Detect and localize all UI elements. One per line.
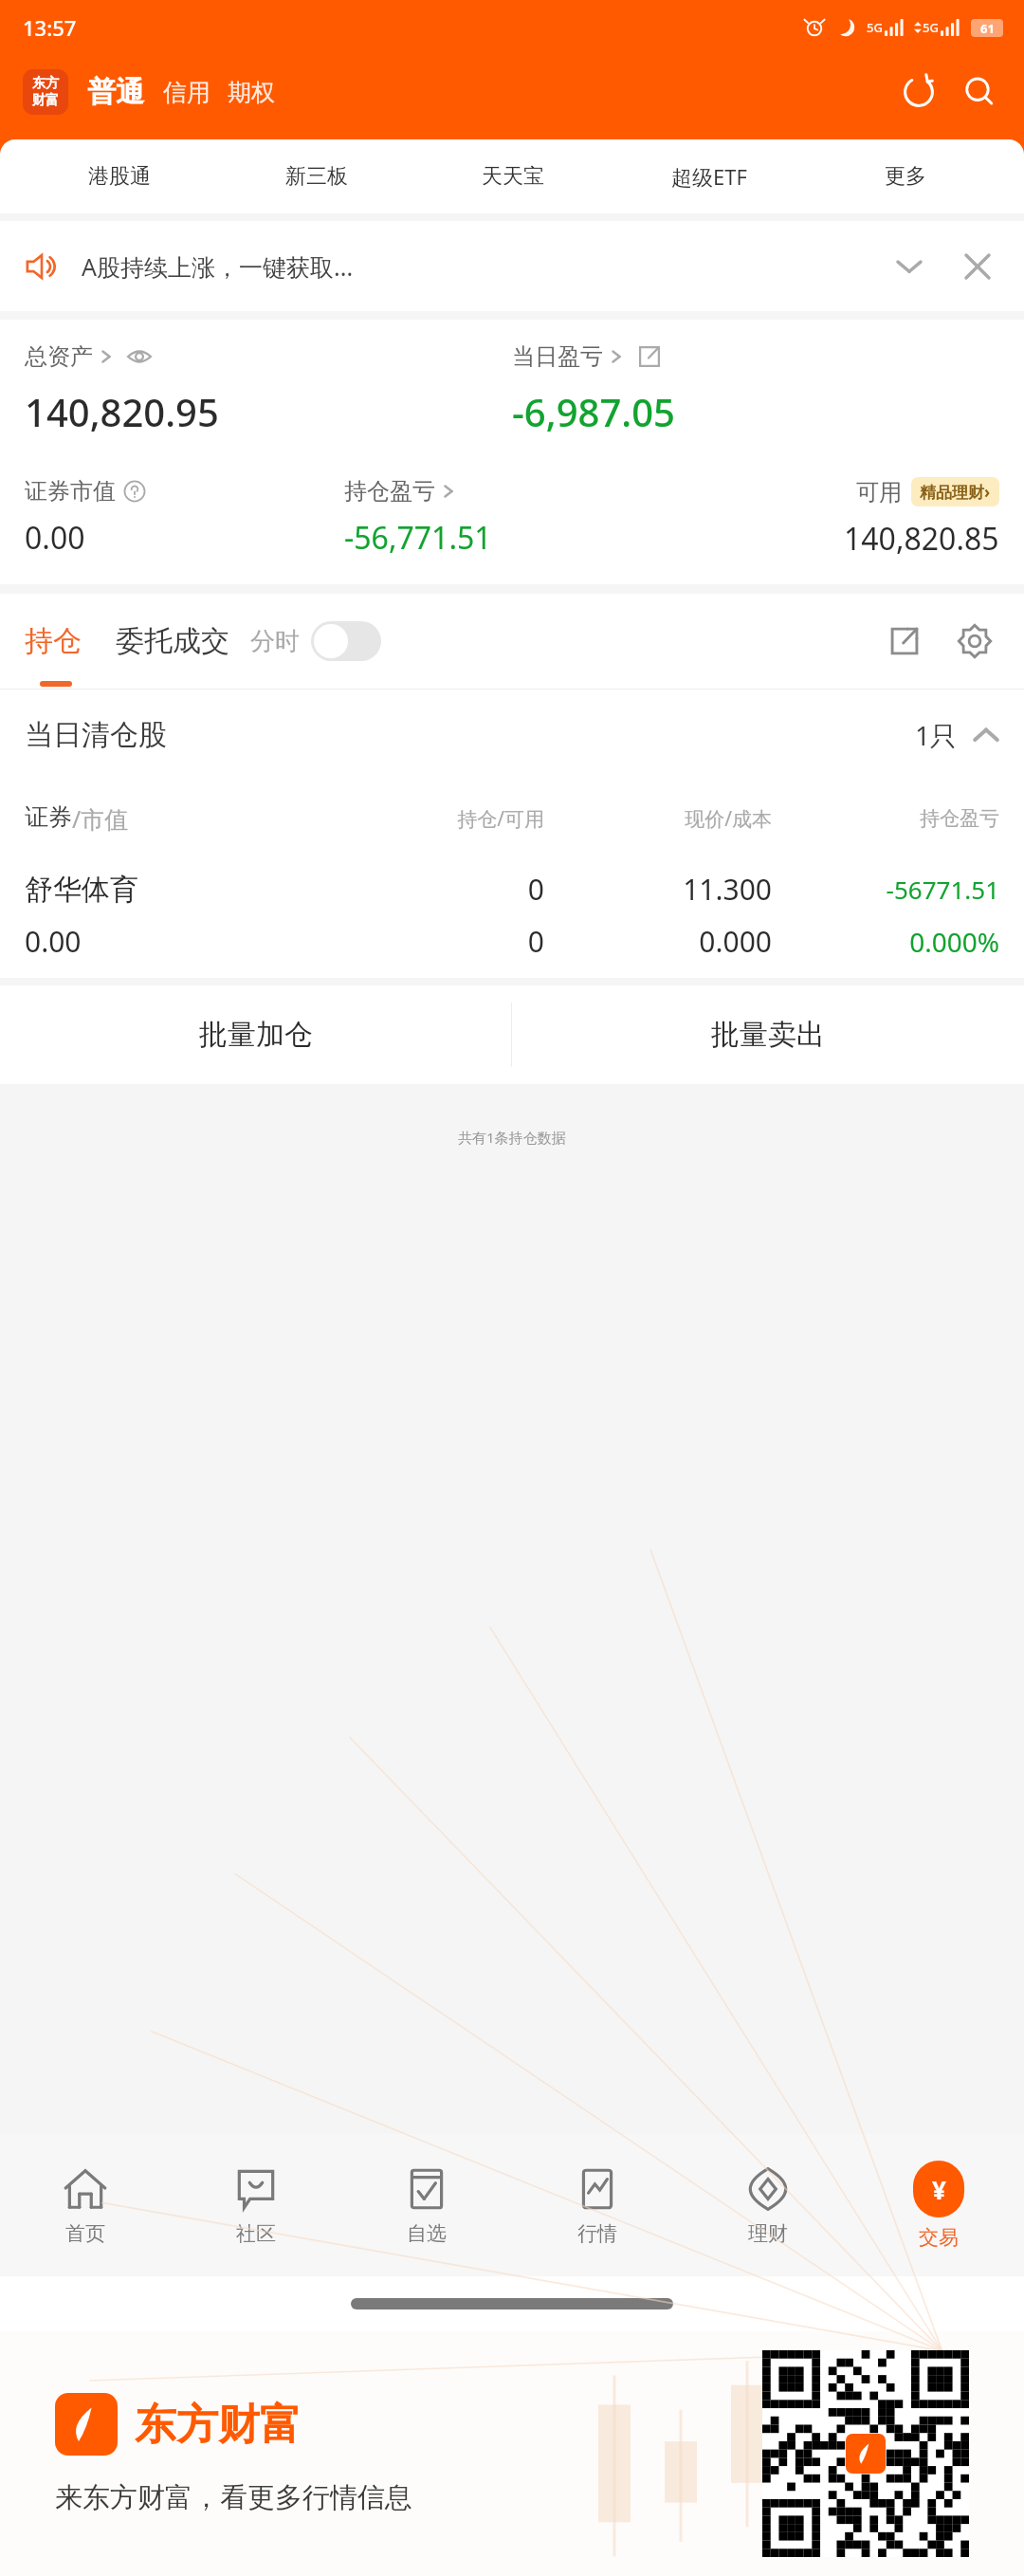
button[interactable]: 信用 [163,78,210,107]
staticText: 0.00 [25,517,85,559]
button[interactable]: Open external [880,616,929,666]
button[interactable]: 当日清仓股 [25,690,999,781]
staticText: 信用 [163,78,210,107]
staticText: 1只 [915,717,958,753]
staticText: 可用 [856,478,902,506]
button[interactable]: 超级ETF [611,162,807,191]
button[interactable]: 当日盈亏 [512,342,662,371]
staticText: 140,820.85 [844,518,999,560]
staticText: -56771.51 [785,873,999,906]
button[interactable]: 港股通 [21,163,218,190]
staticText: 现价/成本 [558,805,772,833]
staticText: 持仓盈亏 [344,477,435,506]
button[interactable]: 更多 [807,163,1003,190]
button[interactable]: 东方 [23,69,68,115]
button[interactable]: 持仓盈亏 [344,477,456,506]
staticText: 东方 [32,75,59,92]
staticText: A股持续上涨，一键获取... [82,250,354,283]
staticText: 天天宝 [482,163,544,190]
staticText: 持仓盈亏 [785,806,999,831]
button[interactable]: 委托成交 [116,623,229,659]
staticText: 超级ETF [671,162,747,191]
staticText: 港股通 [88,163,151,190]
button[interactable]: 证券市值 [25,477,146,506]
button[interactable]: Refresh [897,70,941,114]
button[interactable]: 社区 [171,2134,341,2276]
staticText: 新三板 [285,163,348,190]
button[interactable]: 舒华体育 [0,856,1024,978]
staticText: 舒华体育 [25,872,330,908]
staticText: 委托成交 [116,623,229,659]
staticText: 0.000 [558,922,772,961]
button[interactable]: 普通 [87,74,144,110]
button[interactable]: 持仓 [25,623,82,659]
staticText: 13:57 [23,13,77,42]
staticText: 证券 [25,802,72,832]
button[interactable]: 天天宝 [414,163,611,190]
staticText: 自选 [407,2221,447,2246]
button[interactable]: 行情 [512,2134,683,2276]
staticText: /市值 [72,802,129,835]
button[interactable]: ¥ [853,2134,1024,2276]
staticText: 社区 [236,2221,276,2246]
button[interactable]: A股持续上涨，一键获取... [25,221,999,311]
staticText: 当日盈亏 [512,342,603,371]
staticText: 5G [867,19,883,36]
staticText: 当日清仓股 [25,717,167,753]
staticText: ¥ [932,2173,946,2206]
staticText: 财富 [32,92,59,109]
staticText: 0.00 [25,922,330,961]
staticText: 140,820.95 [25,386,219,437]
button[interactable]: 精品理财› [911,477,999,506]
staticText: 共有1条持仓数据 [458,1128,566,1147]
staticText: 总资产 [25,342,93,371]
button[interactable]: 新三板 [218,163,414,190]
staticText: 证券市值 [25,477,116,506]
staticText: 首页 [65,2221,105,2246]
staticText: 61 [980,20,995,37]
staticText: 11.300 [558,870,772,909]
staticText: 更多 [885,163,926,190]
button[interactable]: 自选 [341,2134,512,2276]
staticText: -6,987.05 [512,386,675,437]
button[interactable]: Close [956,245,999,288]
staticText: 期权 [228,78,275,107]
button[interactable]: Toggle chart [311,621,381,661]
staticText: 0 [330,922,544,961]
staticText: 交易 [919,2225,959,2250]
staticText: 理财 [748,2221,788,2246]
staticText: 分时 [250,626,300,657]
button[interactable]: 批量加仓 [0,985,511,1084]
staticText: 0.000% [785,924,999,960]
staticText: 普通 [87,74,144,110]
button[interactable]: 首页 [0,2134,171,2276]
button[interactable]: 理财 [683,2134,853,2276]
staticText: 0 [330,870,544,909]
button[interactable]: 总资产 [25,342,152,371]
staticText: 精品理财› [920,481,991,503]
button[interactable]: Expand [887,245,931,288]
staticText: 5G [923,19,939,36]
button[interactable]: Search [958,70,1001,114]
staticText: 东方财富 [135,2399,302,2451]
staticText: 行情 [577,2221,617,2246]
button[interactable]: 分时 [250,626,300,657]
button[interactable]: 批量卖出 [512,985,1024,1084]
staticText: 批量卖出 [711,1017,825,1053]
button[interactable]: 期权 [228,78,275,107]
staticText: 批量加仓 [199,1017,313,1053]
staticText: 来东方财富，看更多行情信息 [55,2480,412,2515]
staticText: 持仓 [25,623,82,659]
staticText: -56,771.51 [344,517,492,559]
staticText: 持仓/可用 [330,805,544,833]
button[interactable]: Settings [950,616,999,666]
